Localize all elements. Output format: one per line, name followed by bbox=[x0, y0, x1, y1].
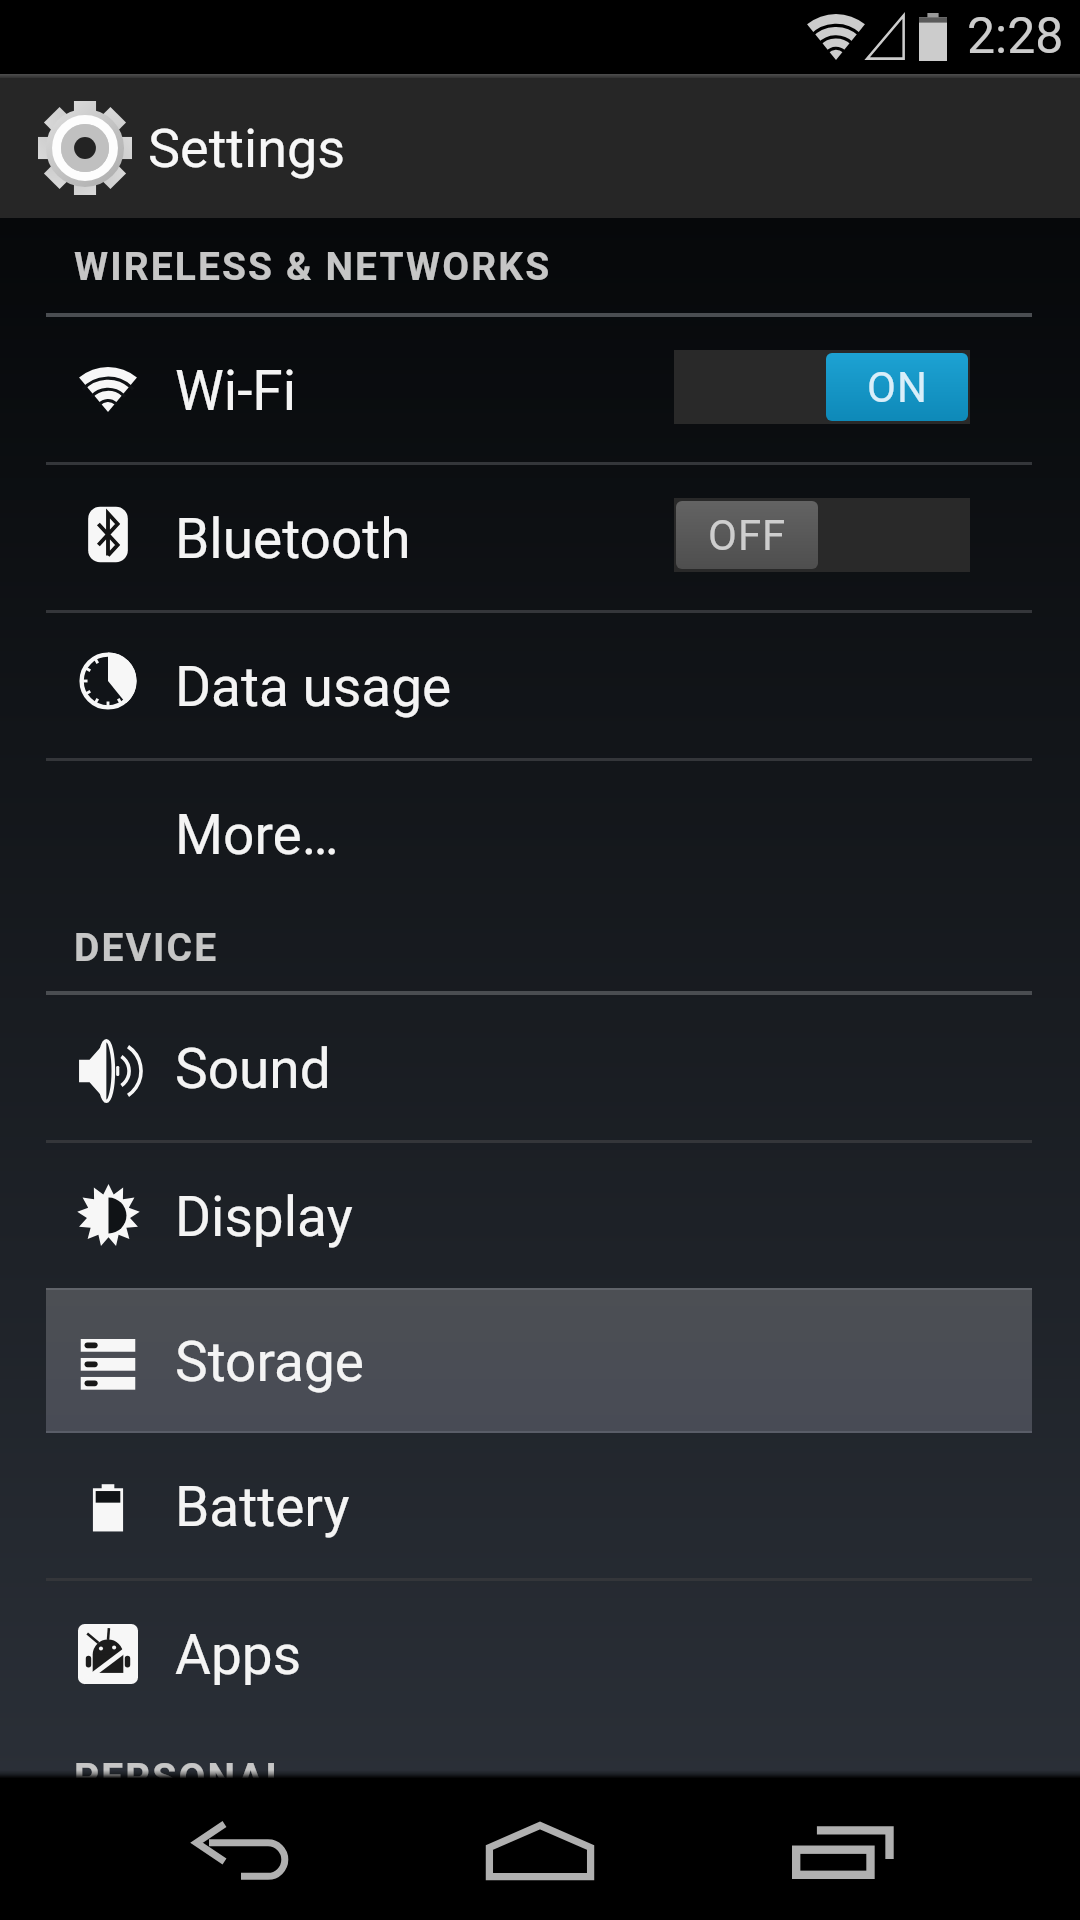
staticText: 2:28 bbox=[967, 7, 1064, 66]
button[interactable]: Storage bbox=[0, 1288, 1080, 1433]
staticText: OFF bbox=[708, 511, 787, 560]
staticText: Data usage bbox=[175, 655, 452, 719]
button[interactable]: Wi-Fi bbox=[0, 317, 1080, 462]
button[interactable]: Recent apps bbox=[665, 1778, 1025, 1920]
staticText: Sound bbox=[175, 1037, 331, 1101]
staticText: Bluetooth bbox=[175, 507, 411, 571]
staticText: Settings bbox=[148, 117, 346, 180]
button[interactable]: Back bbox=[66, 1778, 426, 1920]
button[interactable]: ON bbox=[674, 350, 970, 424]
button[interactable]: Display bbox=[0, 1143, 1080, 1288]
staticText: Apps bbox=[175, 1623, 302, 1687]
button[interactable]: Data usage bbox=[0, 613, 1080, 758]
staticText: Battery bbox=[175, 1475, 350, 1539]
staticText: PERSONAL bbox=[74, 1755, 289, 1778]
button[interactable]: Home bbox=[360, 1778, 720, 1920]
staticText: Storage bbox=[175, 1330, 365, 1394]
button[interactable]: Apps bbox=[0, 1581, 1080, 1726]
staticText: Wi-Fi bbox=[175, 359, 297, 423]
button[interactable]: OFF bbox=[674, 498, 970, 572]
button[interactable]: Battery bbox=[0, 1433, 1080, 1578]
button[interactable]: More… bbox=[0, 761, 1080, 906]
button[interactable]: Bluetooth bbox=[0, 465, 1080, 610]
staticText: DEVICE bbox=[74, 925, 219, 971]
staticText: More… bbox=[175, 803, 339, 867]
staticText: ON bbox=[867, 363, 928, 412]
button[interactable]: Settings, up bbox=[0, 78, 386, 218]
staticText: WIRELESS & NETWORKS bbox=[74, 244, 552, 290]
button[interactable]: Sound bbox=[0, 995, 1080, 1140]
staticText: Display bbox=[175, 1185, 353, 1249]
